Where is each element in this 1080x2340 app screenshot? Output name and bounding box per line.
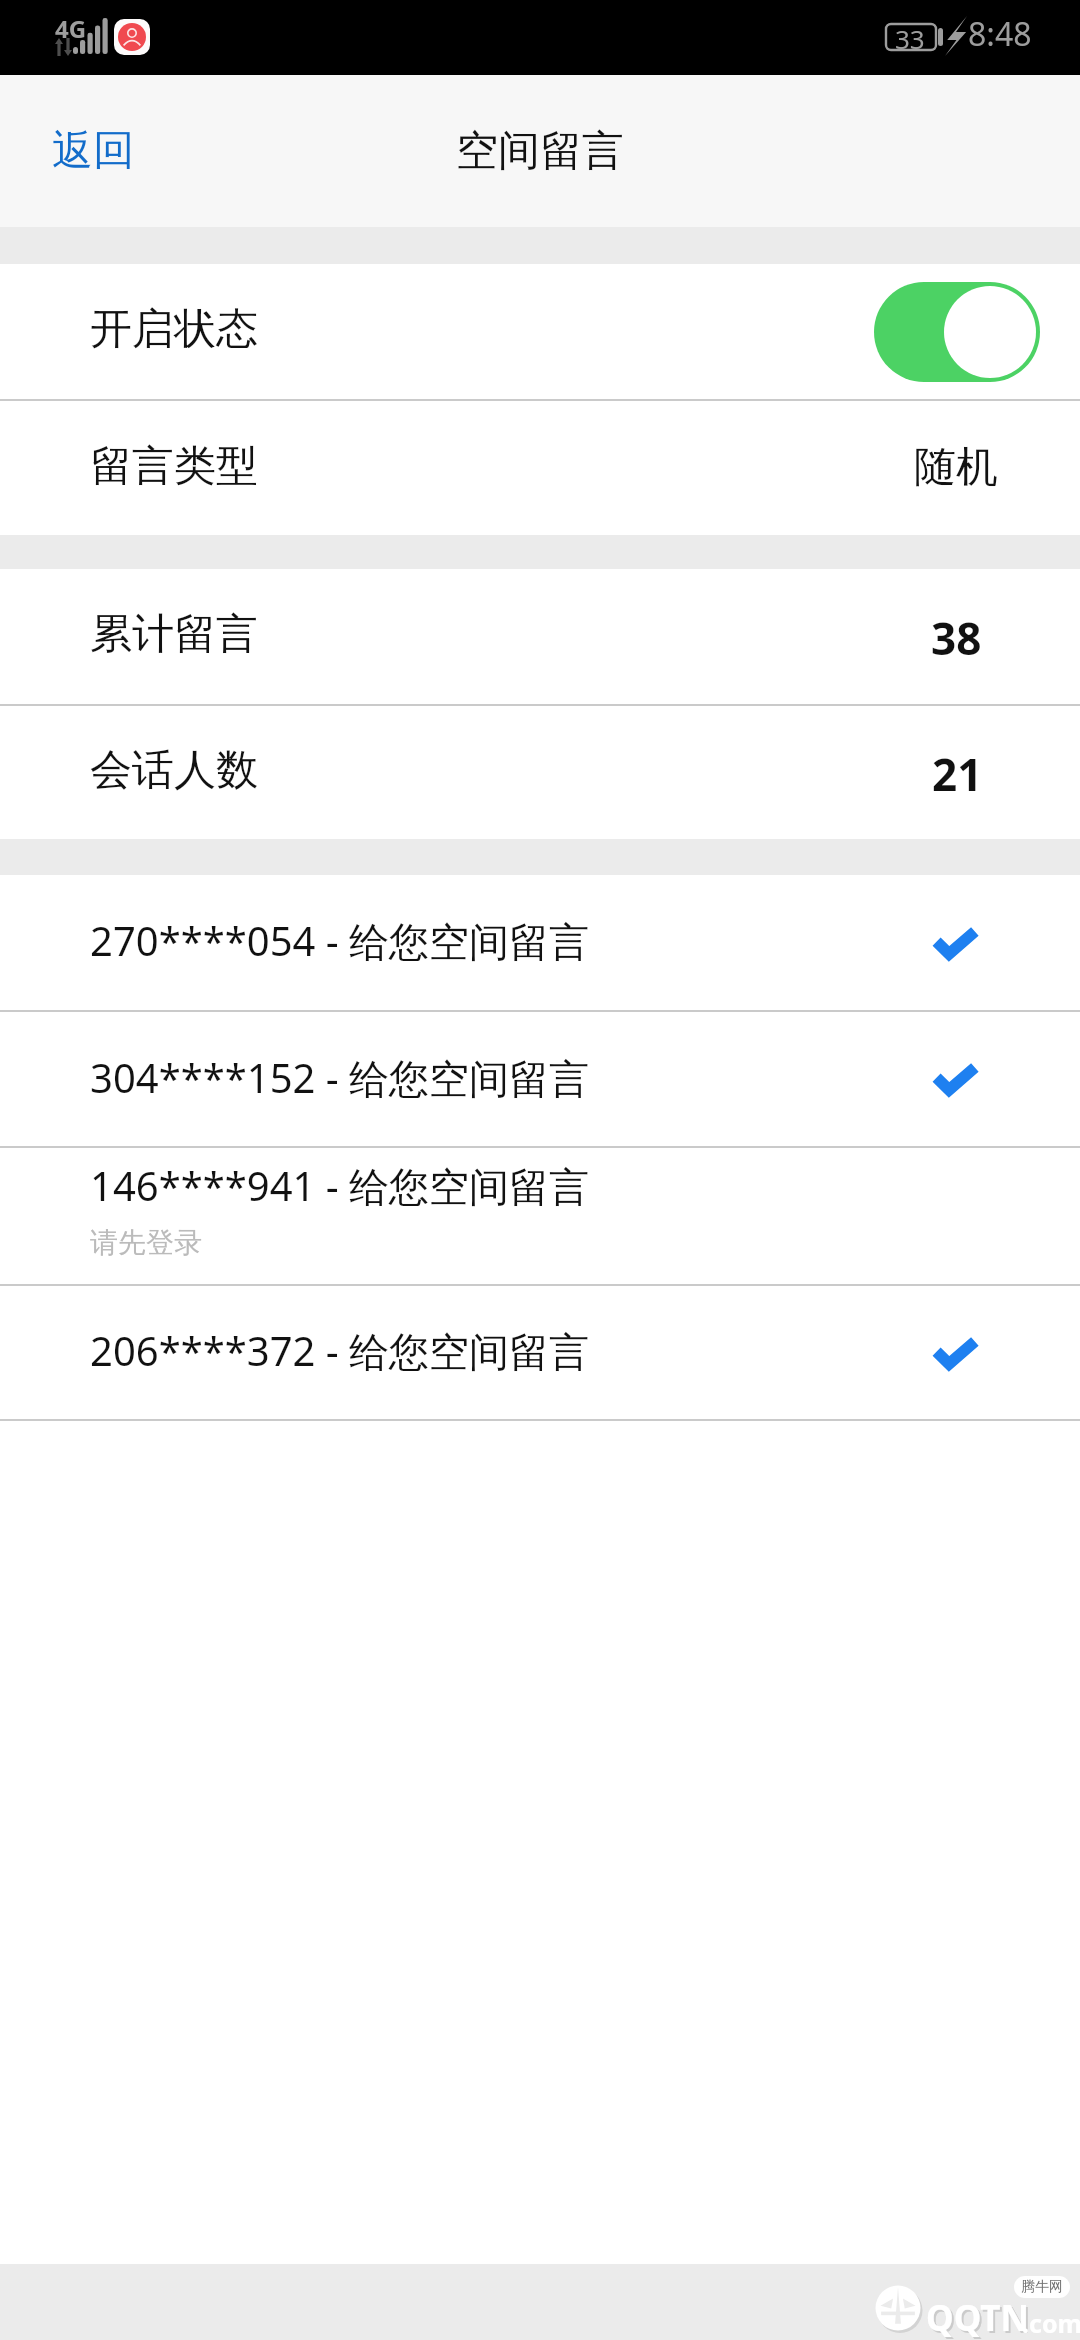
staticText: 304****152 - 给您空间留言 <box>90 1050 590 1105</box>
staticText: 返回 <box>52 125 134 177</box>
staticText: 请先登录 <box>90 1225 202 1260</box>
staticText: 空间留言 <box>456 125 624 178</box>
button[interactable]: 开启状态 <box>0 264 1080 399</box>
staticText: QQTN <box>928 2296 1031 2340</box>
button[interactable]: 返回 <box>0 101 164 201</box>
button[interactable]: 开启状态 switch, on <box>874 282 1040 382</box>
button[interactable]: 270****054 - 给您空间留言 <box>0 875 1080 1010</box>
button[interactable]: 304****152 - 给您空间留言 <box>0 1012 1080 1146</box>
staticText: 270****054 - 给您空间留言 <box>90 913 590 968</box>
staticText: 腾牛网 <box>1021 2278 1063 2296</box>
button[interactable]: 会话人数 <box>0 706 1080 839</box>
staticText: 38 <box>931 608 982 668</box>
button[interactable]: 留言类型 <box>0 401 1080 535</box>
button[interactable]: 146****941 - 给您空间留言 <box>0 1148 1080 1284</box>
button[interactable]: 206****372 - 给您空间留言 <box>0 1286 1080 1419</box>
staticText: 33 <box>895 21 925 56</box>
other: 已送达 (delivered) <box>934 1063 977 1095</box>
staticText: 146****941 - 给您空间留言 <box>90 1158 590 1213</box>
staticText: 留言类型 <box>90 440 258 493</box>
staticText: 开启状态 <box>90 303 258 356</box>
staticText: 21 <box>932 744 983 804</box>
staticText: 会话人数 <box>90 744 258 797</box>
staticText: 4G <box>55 12 87 45</box>
staticText: 随机 <box>914 441 998 494</box>
other: 已送达 (delivered) <box>934 1337 977 1369</box>
staticText: 累计留言 <box>90 608 258 661</box>
staticText: .com <box>1022 2306 1080 2340</box>
staticText: 8:48 <box>968 12 1032 56</box>
other: 已送达 (delivered) <box>934 927 977 959</box>
staticText: QQTN <box>926 2294 1029 2340</box>
button[interactable]: 累计留言 <box>0 569 1080 704</box>
staticText: 206****372 - 给您空间留言 <box>90 1323 590 1378</box>
